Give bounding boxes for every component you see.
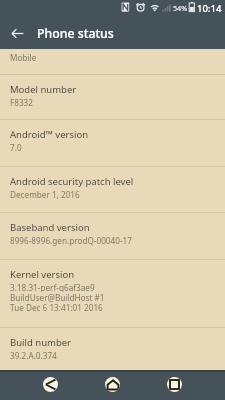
staticText: Tue Dec 6 13:41:01 2016 <box>10 302 103 313</box>
button[interactable]: Model number <box>0 74 225 119</box>
staticText: Phone status <box>37 25 114 42</box>
staticText: 54% <box>173 3 188 13</box>
staticText: 39.2.A.0.374 <box>10 350 57 361</box>
staticText: 8996-8996.gen.prodQ-00040-17 <box>10 235 132 246</box>
staticText: Android™ version <box>10 128 89 141</box>
staticText: F8332 <box>10 97 33 108</box>
staticText: December 1, 2016 <box>10 189 80 200</box>
button[interactable]: Build number <box>0 327 225 370</box>
staticText: 7.0 <box>10 142 22 153</box>
button[interactable]: Recent apps <box>161 371 187 397</box>
staticText: Build number <box>10 336 72 349</box>
button[interactable]: Kernel version <box>0 259 225 327</box>
staticText: Android security patch level <box>10 175 134 188</box>
button[interactable]: Baseband version <box>0 212 225 259</box>
staticText: Kernel version <box>10 268 75 281</box>
staticText: 10:14 <box>197 2 222 15</box>
button[interactable]: Navigate up <box>0 15 34 49</box>
staticText: 3.18.31-perf-g6af3ae9 <box>10 282 95 292</box>
staticText: Model number <box>10 83 77 96</box>
staticText: BuildUser@BuildHost #1 <box>10 292 105 302</box>
button[interactable]: Home <box>99 371 125 397</box>
button[interactable]: Android security patch level <box>0 166 225 212</box>
staticText: Mobile <box>10 52 37 63</box>
button[interactable]: Back <box>37 371 63 397</box>
staticText: Baseband version <box>10 221 90 234</box>
button[interactable]: Android™ version <box>0 119 225 166</box>
